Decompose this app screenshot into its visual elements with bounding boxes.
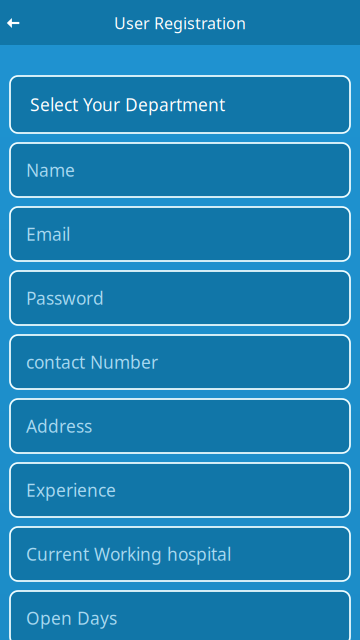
button[interactable]: contact Number [10,335,350,389]
staticText: contact Number [26,350,158,373]
staticText: Open Days [26,606,117,629]
button[interactable]: Current Working hospital [10,527,350,581]
button[interactable]: Address [10,399,350,453]
button[interactable]: Open Days [10,591,350,640]
staticText: Password [26,286,104,309]
button[interactable]: Back [0,0,26,45]
staticText: Email [26,222,70,245]
staticText: Address [26,414,92,437]
button[interactable]: Email [10,207,350,261]
staticText: Name [26,158,75,181]
staticText: Experience [26,478,116,501]
button[interactable]: Experience [10,463,350,517]
staticText: Select Your Department [30,93,225,116]
staticText: Current Working hospital [26,542,231,565]
button[interactable]: Name [10,143,350,197]
staticText: User Registration [114,12,246,34]
button[interactable]: Select Your Department [10,76,350,133]
button[interactable]: Password [10,271,350,325]
